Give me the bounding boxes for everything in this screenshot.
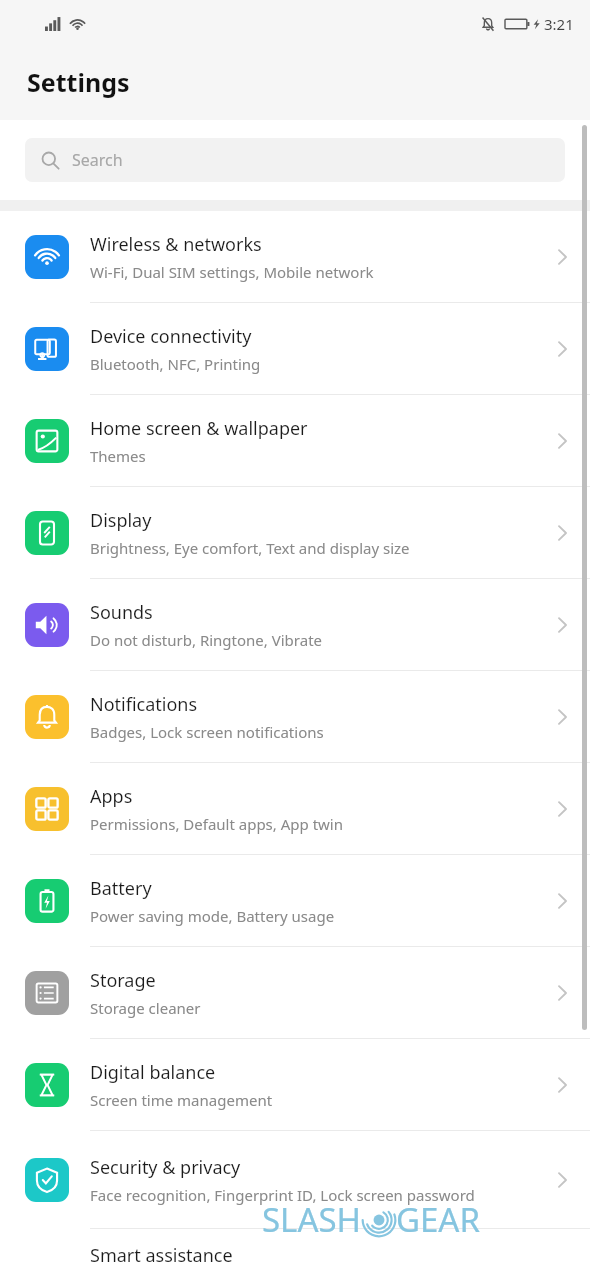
staticText: Sounds (90, 600, 153, 625)
staticText: Do not disturb, Ringtone, Vibrate (90, 630, 323, 650)
staticText: SLASH (262, 1197, 362, 1242)
button[interactable]: Digital balance (0, 1039, 590, 1131)
staticText: Search (72, 149, 123, 171)
button[interactable]: Notifications (0, 671, 590, 763)
staticText: Security & privacy (90, 1155, 241, 1180)
staticText: Brightness, Eye comfort, Text and displa… (90, 538, 410, 558)
staticText: Screen time management (90, 1090, 273, 1110)
staticText: Storage cleaner (90, 998, 201, 1018)
button[interactable]: Wireless & networks (0, 211, 590, 303)
staticText: Digital balance (90, 1060, 216, 1085)
button[interactable]: Display (0, 487, 590, 579)
staticText: Home screen & wallpaper (90, 416, 308, 441)
button[interactable]: Search (25, 138, 565, 182)
staticText: Smart assistance (90, 1243, 233, 1268)
staticText: Permissions, Default apps, App twin (90, 814, 344, 834)
staticText: Bluetooth, NFC, Printing (90, 354, 261, 374)
staticText: Badges, Lock screen notifications (90, 722, 324, 742)
button[interactable]: Security & privacy (0, 1131, 590, 1229)
staticText: Notifications (90, 692, 198, 717)
staticText: Display (90, 508, 152, 533)
button[interactable]: Battery (0, 855, 590, 947)
staticText: 3:21 (544, 14, 574, 34)
staticText: Face recognition, Fingerprint ID, Lock s… (90, 1185, 475, 1205)
button[interactable]: Home screen & wallpaper (0, 395, 590, 487)
staticText: Apps (90, 784, 133, 809)
staticText: GEAR (396, 1197, 480, 1242)
staticText: Device connectivity (90, 324, 252, 349)
staticText: Settings (27, 65, 130, 99)
button[interactable]: Device connectivity (0, 303, 590, 395)
button[interactable]: Sounds (0, 579, 590, 671)
staticText: Wi-Fi, Dual SIM settings, Mobile network (90, 262, 374, 282)
staticText: Wireless & networks (90, 232, 262, 257)
staticText: Power saving mode, Battery usage (90, 906, 335, 926)
staticText: Themes (90, 446, 146, 466)
button[interactable]: Storage (0, 947, 590, 1039)
staticText: Battery (90, 876, 152, 901)
button[interactable]: Apps (0, 763, 590, 855)
staticText: Storage (90, 968, 156, 993)
